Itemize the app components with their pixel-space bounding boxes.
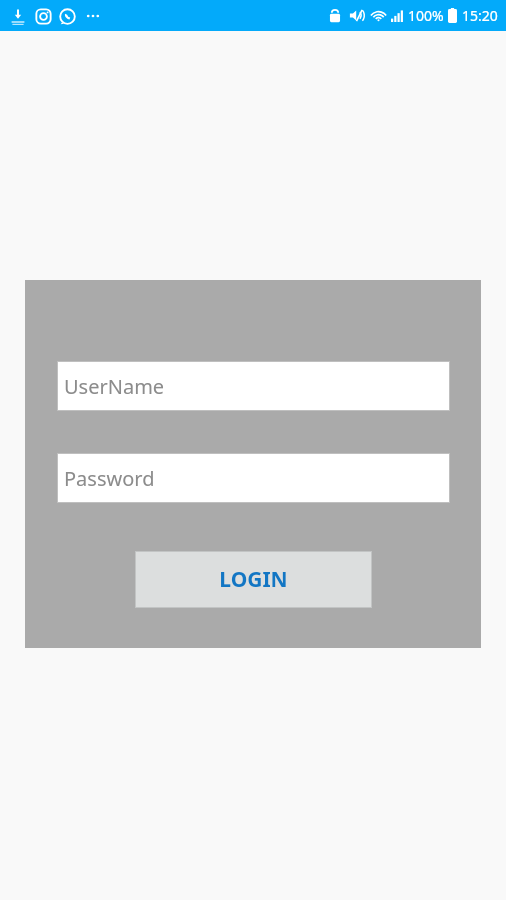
button[interactable]: LOGIN (135, 551, 372, 608)
staticText: UserName (64, 373, 165, 400)
button[interactable]: UserName (57, 361, 450, 411)
staticText: 15:20 (462, 6, 498, 25)
staticText: 100% (408, 6, 444, 25)
staticText: Password (64, 465, 155, 492)
button[interactable]: Password (57, 453, 450, 503)
staticText: LOGIN (219, 565, 288, 594)
